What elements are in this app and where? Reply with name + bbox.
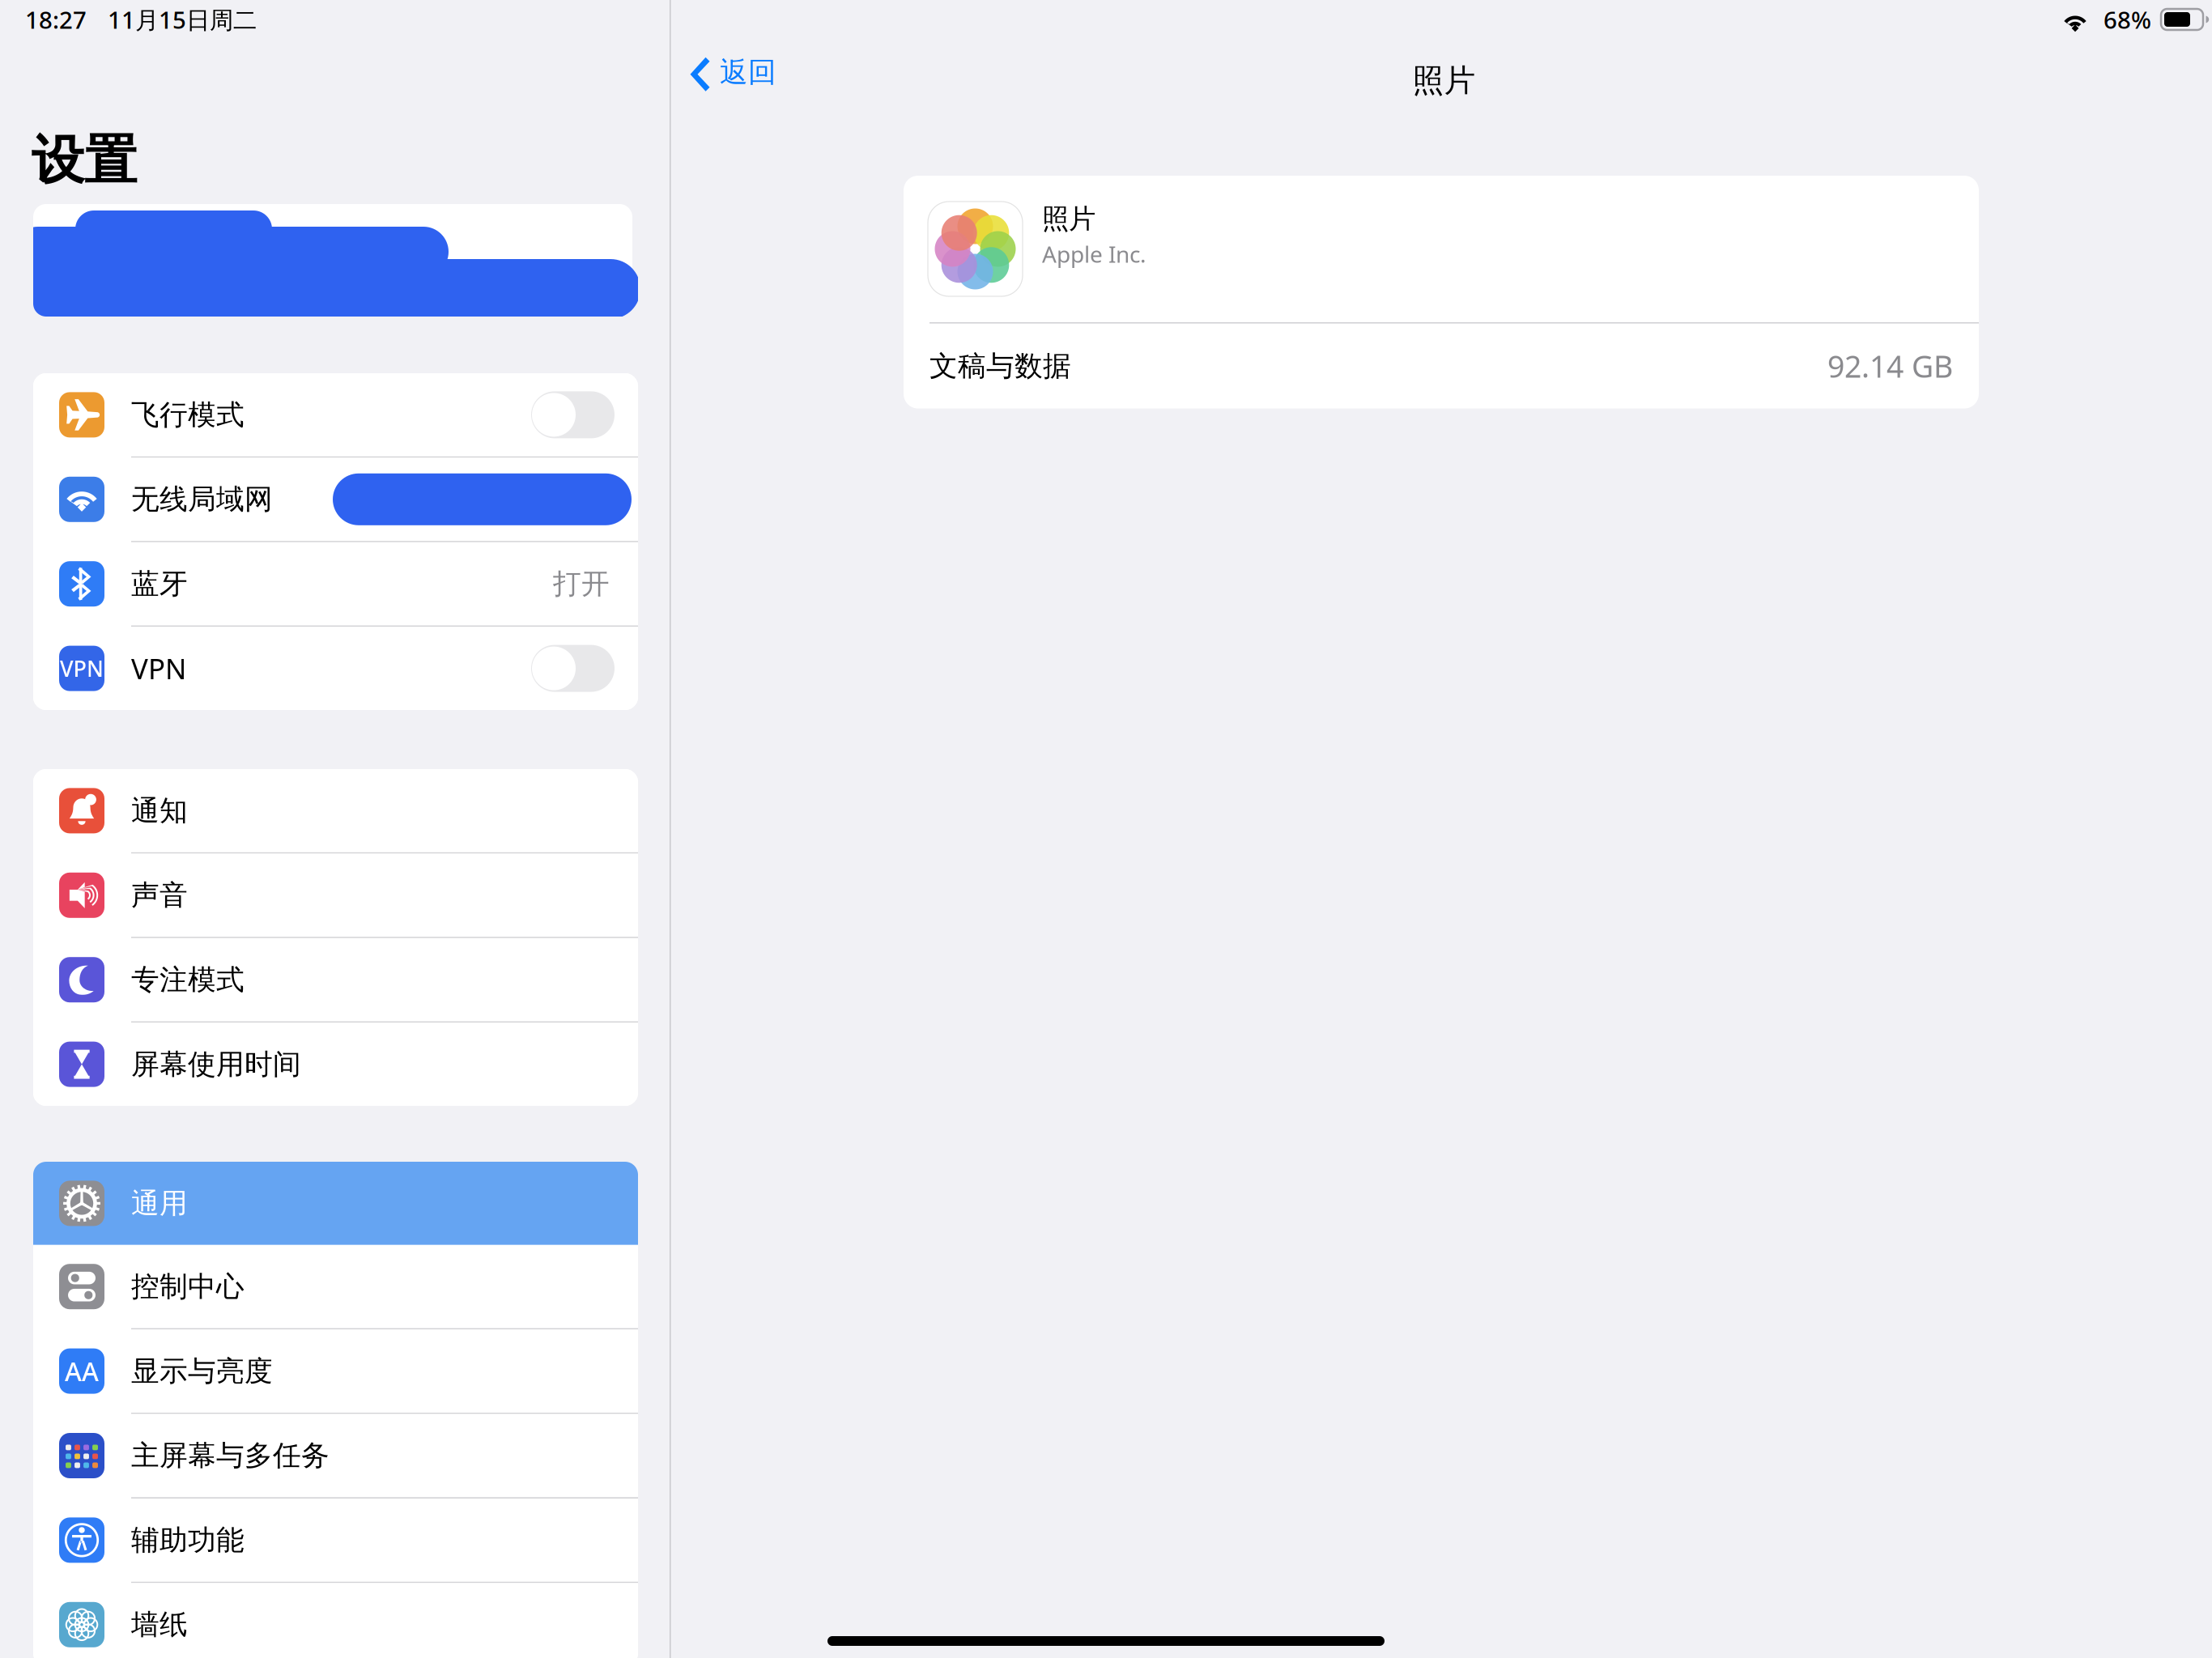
staticText: 飞行模式 [131,398,245,432]
staticText: 文稿与数据 [929,349,1071,383]
staticText: 墙纸 [131,1607,188,1642]
button[interactable]: 无线局域网 [33,458,638,541]
staticText: 通用 [131,1186,188,1221]
staticText: 专注模式 [131,962,245,997]
button[interactable]: 墙纸 [33,1583,638,1658]
button[interactable]: 控制中心 [33,1245,638,1328]
staticText: 11月15日周二 [108,4,257,35]
button[interactable]: 飞行模式 [33,373,638,456]
staticText: 照片 [1412,62,1476,100]
staticText: VPN [131,650,186,687]
staticText: 主屏幕与多任务 [131,1438,330,1473]
button[interactable]: 蓝牙 [33,542,638,625]
button[interactable]: AA [33,1329,638,1413]
staticText: 打开 [553,567,610,601]
button[interactable]: 专注模式 [33,938,638,1021]
staticText: 通知 [131,793,188,828]
staticText: 辅助功能 [131,1523,245,1557]
staticText: Apple Inc. [1042,239,1146,269]
button[interactable]: VPN [33,627,638,710]
staticText: 屏幕使用时间 [131,1047,301,1082]
button[interactable]: 通用 [33,1162,638,1245]
button[interactable]: 声音 [33,854,638,937]
staticText: 返回 [720,55,776,90]
staticText: 显示与亮度 [131,1354,273,1388]
button[interactable]: Apple ID account [33,204,638,317]
staticText: 92.14 GB [1827,346,1953,386]
staticText: 无线局域网 [131,482,273,517]
staticText: VPN [58,653,106,684]
staticText: 控制中心 [131,1269,245,1304]
staticText: 声音 [131,878,188,912]
button[interactable]: 主屏幕与多任务 [33,1414,638,1497]
staticText: AA [63,1352,100,1390]
button[interactable]: 通知 [33,769,638,852]
button[interactable]: 文稿与数据 [904,324,1979,409]
staticText: 蓝牙 [131,567,188,601]
button[interactable]: 屏幕使用时间 [33,1023,638,1106]
staticText: 18:27 [25,4,87,35]
staticText: 68% [2104,4,2151,35]
button[interactable]: 返回 [683,47,781,98]
staticText: 设置 [32,128,137,193]
staticText: 照片 [1042,202,1095,236]
button[interactable]: 辅助功能 [33,1499,638,1582]
